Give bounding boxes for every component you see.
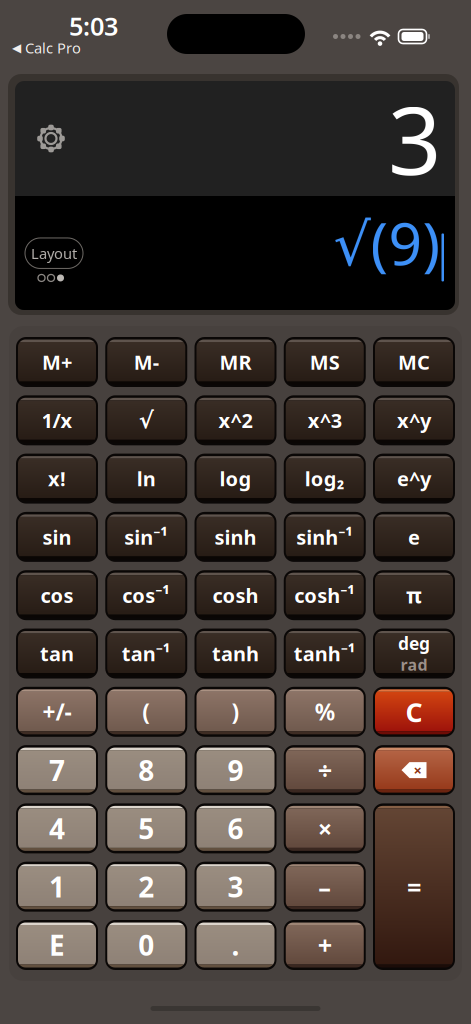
button[interactable]: tanh⁻¹ bbox=[284, 628, 366, 678]
button[interactable]: tan⁻¹ bbox=[105, 628, 187, 678]
staticText: = bbox=[407, 870, 421, 903]
staticText: √ bbox=[139, 407, 154, 433]
staticText: 6 bbox=[227, 810, 243, 847]
staticText: 1 bbox=[49, 868, 65, 905]
staticText: cosh⁻¹ bbox=[294, 582, 355, 608]
staticText: ln bbox=[137, 465, 156, 492]
button[interactable]: sinh bbox=[194, 512, 276, 562]
button[interactable]: tan bbox=[16, 628, 98, 678]
button[interactable]: log₂ bbox=[284, 454, 366, 504]
button[interactable]: deg bbox=[373, 628, 455, 678]
button[interactable]: sinh⁻¹ bbox=[284, 512, 366, 562]
button[interactable]: 4 bbox=[16, 803, 98, 853]
staticText: tan⁻¹ bbox=[122, 640, 171, 667]
button[interactable]: – bbox=[284, 862, 366, 912]
staticText: x^3 bbox=[308, 407, 342, 434]
button[interactable]: = bbox=[373, 803, 455, 970]
staticText: log₂ bbox=[305, 465, 345, 492]
staticText: E bbox=[49, 926, 65, 964]
button[interactable]: 2 bbox=[105, 862, 187, 912]
button[interactable]: M- bbox=[105, 337, 187, 387]
button[interactable]: 6 bbox=[194, 803, 276, 853]
button[interactable]: 1 bbox=[16, 862, 98, 912]
button[interactable]: E bbox=[16, 920, 98, 970]
button[interactable]: MS bbox=[284, 337, 366, 387]
button[interactable]: log bbox=[194, 454, 276, 504]
staticText: Calc Pro bbox=[25, 38, 81, 57]
button[interactable]: Layout bbox=[25, 238, 83, 268]
button[interactable]: Settings bbox=[36, 123, 66, 153]
staticText: M- bbox=[134, 349, 159, 375]
button[interactable]: cos⁻¹ bbox=[105, 570, 187, 620]
button[interactable]: x^y bbox=[373, 395, 455, 445]
button[interactable]: ) bbox=[194, 687, 276, 737]
staticText: tan bbox=[40, 640, 74, 667]
staticText: x^y bbox=[397, 407, 431, 434]
button[interactable]: √ bbox=[105, 395, 187, 445]
staticText: M+ bbox=[42, 349, 72, 375]
staticText: sinh bbox=[214, 524, 256, 550]
button[interactable]: MR bbox=[194, 337, 276, 387]
button[interactable]: +/- bbox=[16, 687, 98, 737]
button[interactable]: . bbox=[194, 920, 276, 970]
staticText: tanh⁻¹ bbox=[294, 640, 356, 667]
button[interactable]: e^y bbox=[373, 454, 455, 504]
staticText: x! bbox=[48, 465, 66, 492]
button[interactable]: 0 bbox=[105, 920, 187, 970]
staticText: sin bbox=[42, 524, 71, 550]
button[interactable]: cos bbox=[16, 570, 98, 620]
button[interactable]: MC bbox=[373, 337, 455, 387]
staticText: rad bbox=[400, 654, 427, 675]
button[interactable]: × bbox=[284, 803, 366, 853]
staticText: 5:03 bbox=[69, 9, 118, 43]
button[interactable]: M+ bbox=[16, 337, 98, 387]
button[interactable]: ln bbox=[105, 454, 187, 504]
staticText: cos⁻¹ bbox=[122, 582, 170, 608]
staticText: MS bbox=[310, 349, 340, 375]
button[interactable]: Delete bbox=[373, 745, 455, 795]
button[interactable]: % bbox=[284, 687, 366, 737]
staticText: 4 bbox=[49, 810, 65, 847]
staticText: e bbox=[408, 524, 420, 550]
staticText: tanh bbox=[212, 640, 259, 667]
staticText: 1/x bbox=[41, 407, 72, 434]
button[interactable]: x! bbox=[16, 454, 98, 504]
staticText: . bbox=[231, 926, 239, 964]
button[interactable]: 5 bbox=[105, 803, 187, 853]
staticText: sinh⁻¹ bbox=[296, 524, 353, 550]
staticText: 7 bbox=[49, 751, 65, 789]
button[interactable]: cosh⁻¹ bbox=[284, 570, 366, 620]
button[interactable]: e bbox=[373, 512, 455, 562]
staticText: e^y bbox=[397, 465, 431, 492]
button[interactable]: 7 bbox=[16, 745, 98, 795]
button[interactable]: 1/x bbox=[16, 395, 98, 445]
button[interactable]: 3 bbox=[194, 862, 276, 912]
staticText: 3 bbox=[388, 76, 441, 200]
staticText: sin⁻¹ bbox=[124, 524, 168, 550]
staticText: ◀ bbox=[12, 41, 21, 54]
button[interactable]: ( bbox=[105, 687, 187, 737]
staticText: MC bbox=[398, 349, 430, 375]
staticText: cosh bbox=[212, 582, 258, 608]
staticText: 3 bbox=[227, 868, 243, 905]
button[interactable]: x^3 bbox=[284, 395, 366, 445]
button[interactable]: cosh bbox=[194, 570, 276, 620]
button[interactable]: π bbox=[373, 570, 455, 620]
button[interactable]: sin bbox=[16, 512, 98, 562]
button[interactable]: + bbox=[284, 920, 366, 970]
staticText: C bbox=[405, 694, 422, 729]
staticText: ( bbox=[142, 697, 150, 727]
staticText: π bbox=[406, 581, 422, 609]
staticText: + bbox=[318, 928, 332, 962]
button[interactable]: x^2 bbox=[194, 395, 276, 445]
button[interactable]: sin⁻¹ bbox=[105, 512, 187, 562]
button[interactable]: 9 bbox=[194, 745, 276, 795]
button[interactable]: ◀ bbox=[12, 38, 81, 57]
button[interactable]: 8 bbox=[105, 745, 187, 795]
button[interactable]: tanh bbox=[194, 628, 276, 678]
staticText: 2 bbox=[138, 868, 154, 905]
staticText: x^2 bbox=[218, 407, 252, 434]
button[interactable]: ÷ bbox=[284, 745, 366, 795]
button[interactable]: C bbox=[373, 687, 455, 737]
staticText: MR bbox=[219, 349, 251, 375]
